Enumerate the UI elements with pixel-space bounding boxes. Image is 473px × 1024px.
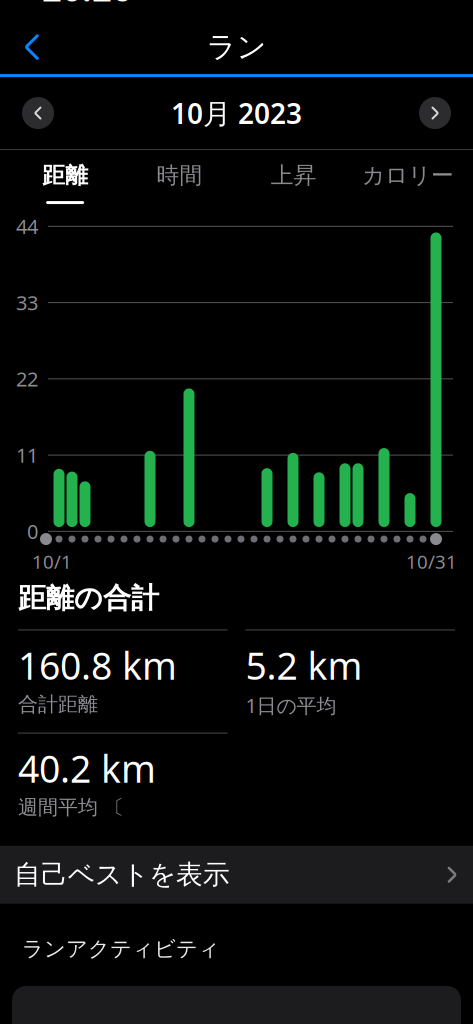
- staticText: 11: [16, 442, 38, 468]
- staticText: カロリー: [362, 162, 454, 189]
- staticText: 合計距離: [18, 692, 98, 717]
- button[interactable]: 上昇: [236, 150, 351, 204]
- staticText: 160.8 km: [18, 640, 177, 690]
- staticText: 上昇: [271, 162, 317, 189]
- staticText: 10/31: [406, 549, 457, 574]
- staticText: 5.2 km: [245, 640, 362, 690]
- staticText: 距離の合計: [18, 581, 159, 615]
- staticText: 10月 2023: [171, 94, 302, 132]
- staticText: 距離: [42, 162, 88, 189]
- button[interactable]: 自己ベストを表示: [0, 846, 473, 904]
- button[interactable]: 次の月: [415, 93, 455, 133]
- staticText: 1日の平均: [245, 692, 336, 719]
- button[interactable]: 時間: [122, 150, 236, 204]
- staticText: 44: [16, 213, 38, 240]
- staticText: ラン: [206, 29, 266, 65]
- staticText: 0: [27, 518, 38, 545]
- button[interactable]: 距離: [8, 150, 122, 204]
- staticText: 時間: [156, 162, 202, 189]
- staticText: ランアクティビティ: [22, 936, 220, 962]
- button[interactable]: 前の月: [18, 93, 58, 133]
- staticText: 20:26: [42, 0, 132, 11]
- staticText: 10/1: [32, 549, 72, 574]
- staticText: 自己ベストを表示: [14, 858, 230, 891]
- staticText: 22: [16, 366, 38, 392]
- staticText: 週間平均 〔: [18, 795, 124, 820]
- button[interactable]: 戻る: [8, 23, 56, 71]
- staticText: 33: [16, 289, 38, 316]
- staticText: 40.2 km: [18, 744, 156, 793]
- button[interactable]: カロリー: [351, 150, 465, 204]
